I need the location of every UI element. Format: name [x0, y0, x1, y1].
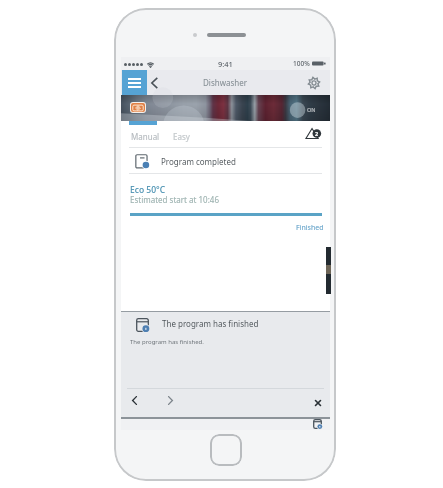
staticText: 100% [293, 59, 310, 68]
staticText: ON [307, 106, 316, 113]
staticText: Estimated start at 10:46 [130, 194, 219, 205]
staticText: The program has finished. [130, 338, 204, 346]
staticText: Finished [296, 223, 324, 233]
button[interactable]: Close [307, 392, 328, 414]
button[interactable]: Program completed [121, 148, 330, 174]
staticText: Manual [131, 131, 160, 142]
staticText: The program has finished [162, 318, 259, 329]
staticText: 9:41 [218, 59, 233, 69]
staticText: Eco 50°C [130, 184, 166, 196]
button[interactable]: Previous [123, 389, 145, 412]
staticText: Dishwasher [203, 77, 248, 88]
staticText: Easy [173, 131, 190, 142]
button[interactable]: Settings [301, 70, 326, 95]
button[interactable]: Menu [122, 70, 147, 95]
button[interactable]: Next [159, 389, 181, 412]
button[interactable] [169, 127, 197, 145]
button[interactable]: Camera [130, 102, 146, 113]
button[interactable]: Back [143, 70, 165, 95]
staticText: Program completed [161, 156, 236, 167]
button[interactable]: Warnings [305, 126, 321, 141]
button[interactable] [127, 127, 163, 145]
staticText: 2 [315, 130, 319, 137]
